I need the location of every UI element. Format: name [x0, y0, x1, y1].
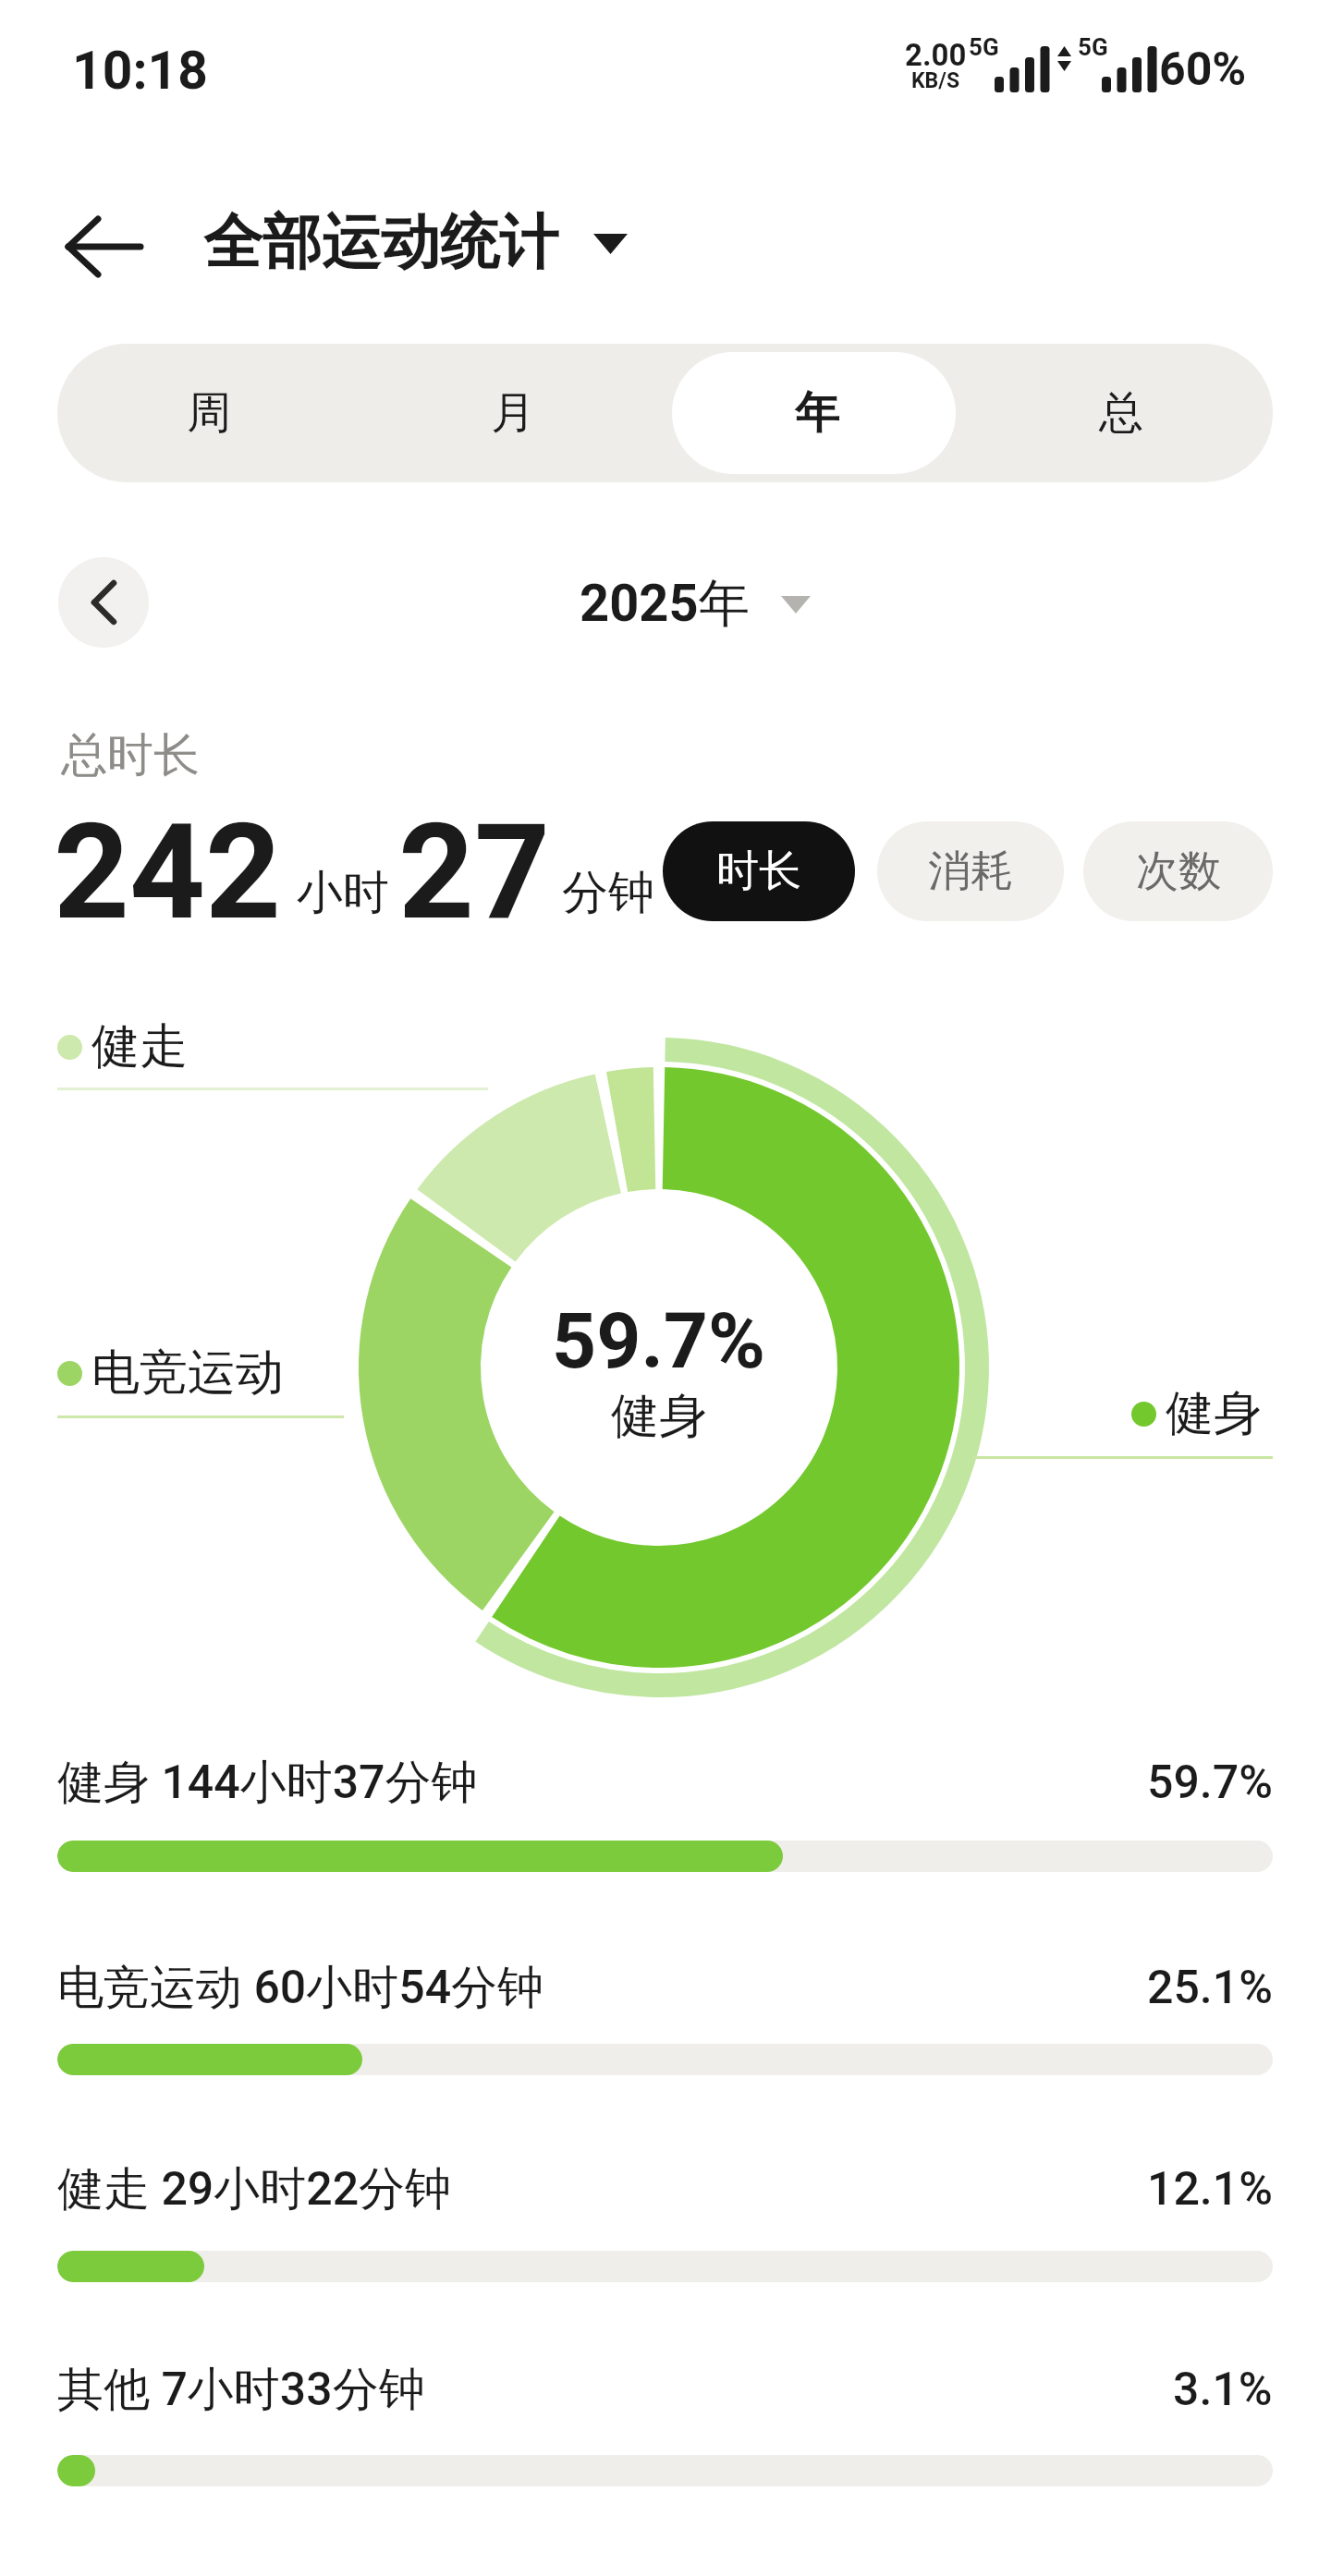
staticText: 5G	[969, 33, 999, 61]
button[interactable]: 2025年	[555, 554, 832, 647]
staticText: 月	[491, 385, 535, 441]
staticText: 健身	[1166, 1383, 1262, 1444]
staticText: 次数	[1136, 844, 1221, 898]
button[interactable]	[55, 208, 153, 286]
staticText: 周	[187, 385, 231, 441]
staticText: 健走	[92, 1016, 188, 1077]
button[interactable]	[58, 557, 149, 648]
staticText: 12.1%	[1147, 2162, 1273, 2217]
staticText: 3.1%	[1173, 2363, 1273, 2417]
button[interactable]: 时长	[663, 821, 855, 921]
staticText: 59.7%	[552, 1295, 766, 1386]
staticText: 5G	[1078, 33, 1108, 61]
button[interactable]: 其他 7小时33分钟	[57, 2361, 1273, 2419]
staticText: 年	[795, 385, 839, 441]
staticText: 健身 144小时37分钟	[57, 1754, 478, 1812]
button[interactable]: 总	[969, 344, 1273, 482]
staticText: 2.00	[905, 37, 967, 73]
button[interactable]: 周	[57, 344, 360, 482]
staticText: 其他 7小时33分钟	[57, 2361, 425, 2419]
staticText: 10:18	[72, 40, 208, 102]
staticText: 27	[398, 795, 551, 933]
button[interactable]: 消耗	[877, 821, 1064, 921]
staticText: 总	[1099, 385, 1143, 441]
staticText: 消耗	[928, 844, 1013, 898]
button[interactable]: 健身 144小时37分钟	[57, 1754, 1273, 1812]
button[interactable]: 全部运动统计	[203, 205, 629, 280]
staticText: 2025年	[580, 571, 751, 637]
staticText: 小时	[297, 864, 389, 922]
staticText: 健身	[611, 1386, 707, 1447]
staticText: 25.1%	[1147, 1961, 1273, 2015]
button[interactable]: 次数	[1083, 821, 1273, 921]
button[interactable]: 年	[665, 344, 969, 482]
staticText: 总时长	[61, 726, 200, 784]
button[interactable]: 健走 29小时22分钟	[57, 2160, 1273, 2218]
staticText: 时长	[716, 844, 801, 898]
staticText: 242	[54, 795, 282, 933]
button[interactable]: 月	[360, 344, 665, 482]
staticText: 60%	[1159, 43, 1247, 97]
button[interactable]: 电竞运动 60小时54分钟	[57, 1959, 1273, 2017]
staticText: 健走 29小时22分钟	[57, 2160, 452, 2218]
staticText: 电竞运动 60小时54分钟	[57, 1959, 544, 2017]
staticText: 电竞运动	[92, 1343, 284, 1403]
staticText: 全部运动统计	[203, 205, 558, 280]
staticText: 59.7%	[1147, 1756, 1273, 1810]
staticText: KB/S	[911, 68, 960, 93]
staticText: 分钟	[562, 864, 654, 922]
